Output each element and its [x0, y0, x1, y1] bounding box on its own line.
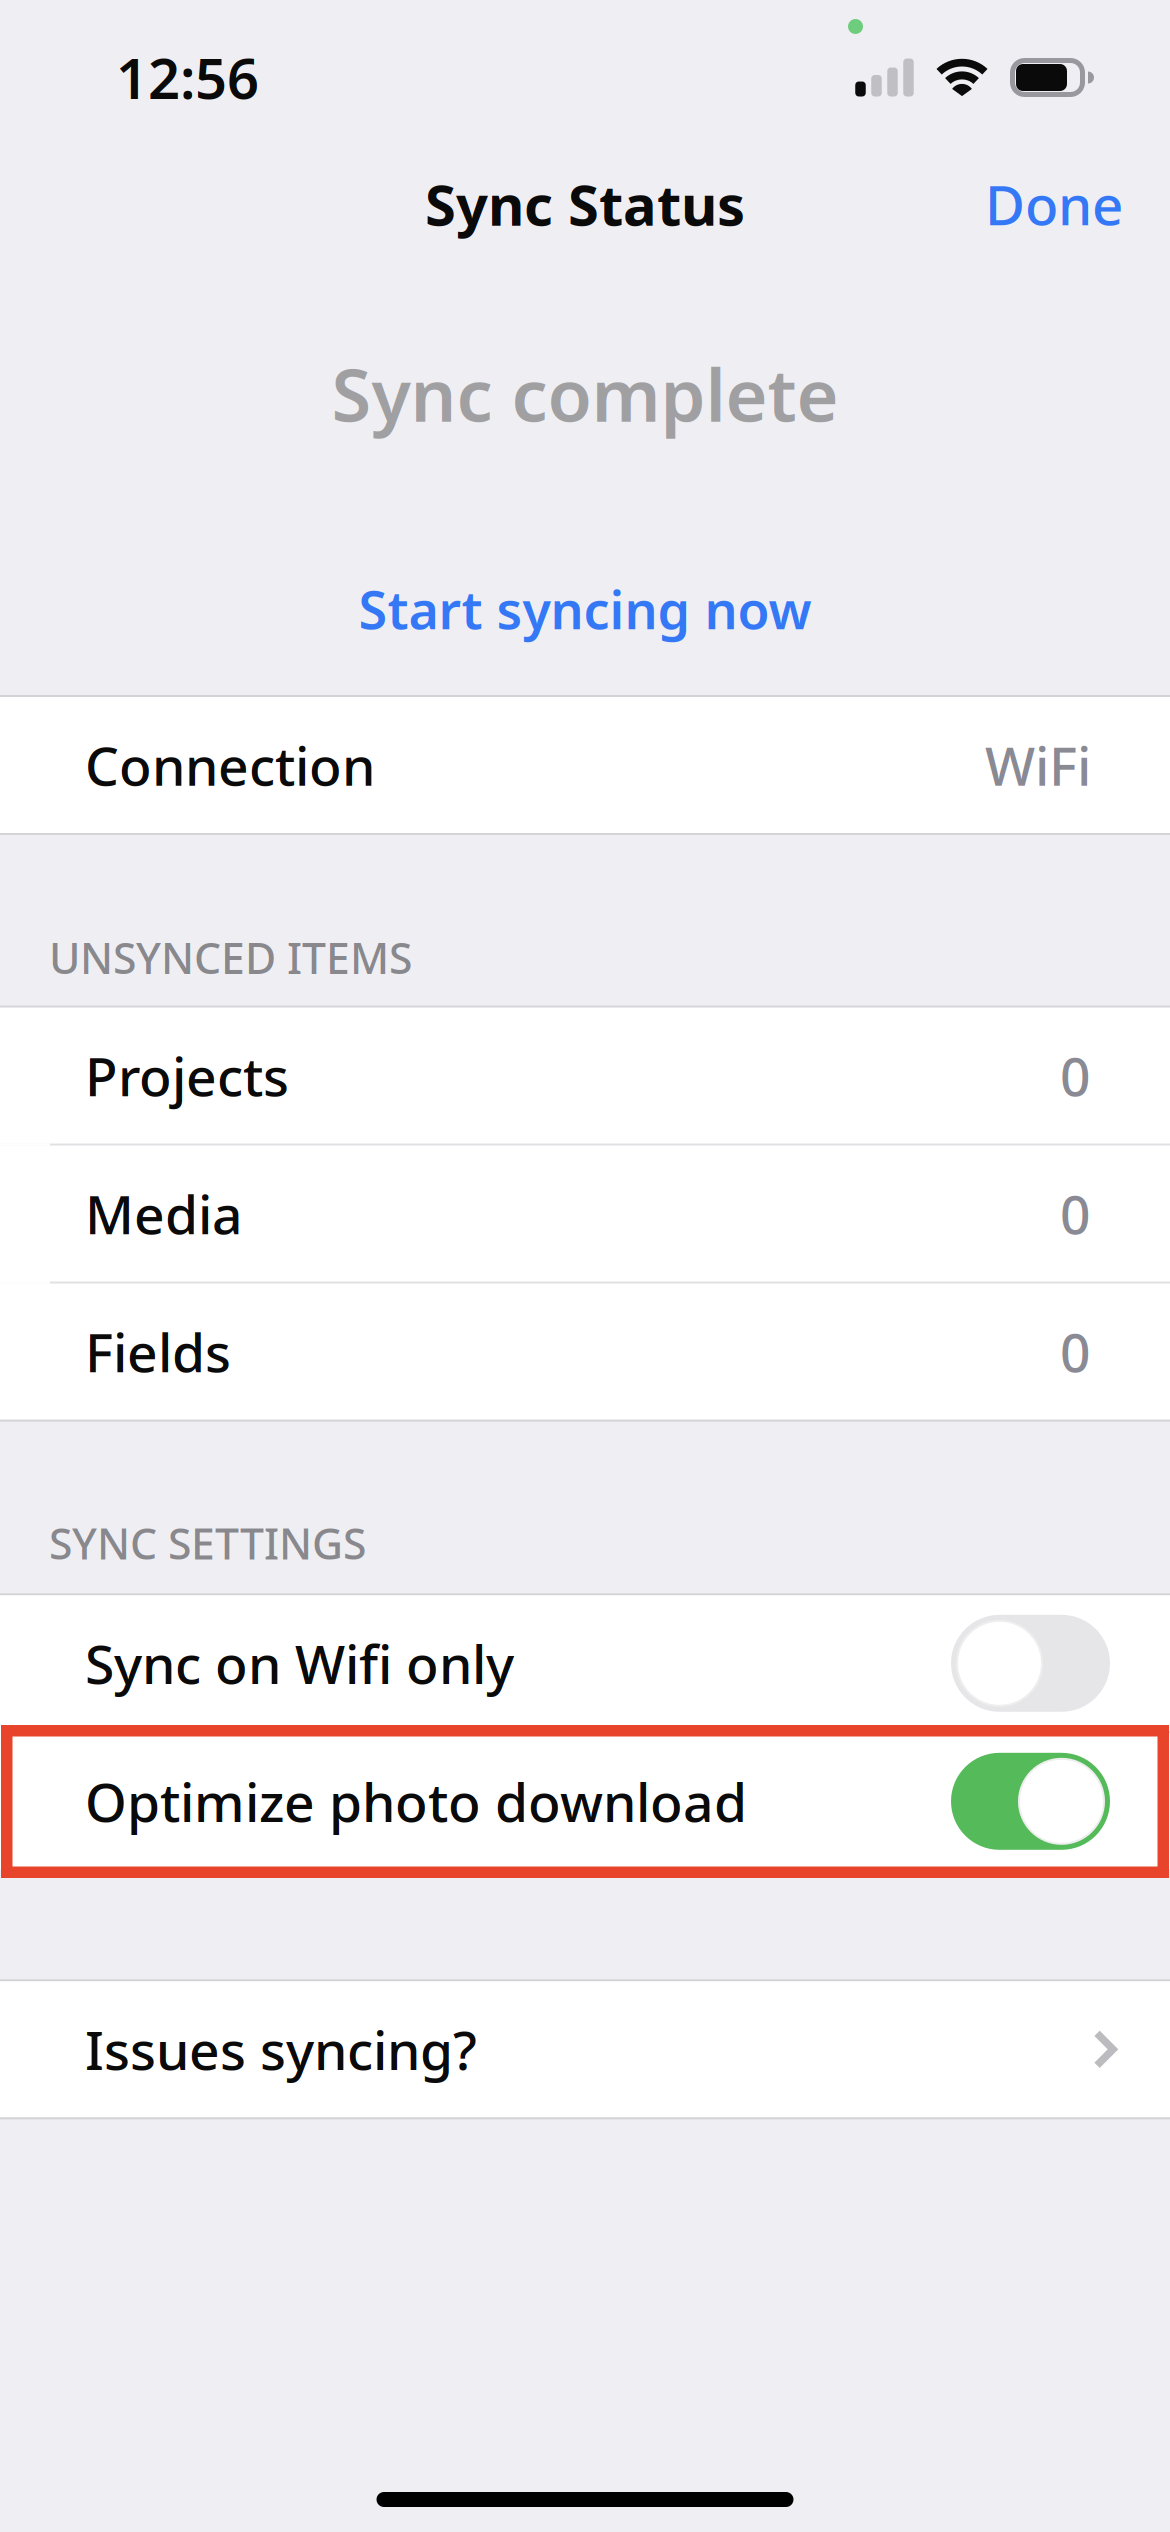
- button[interactable]: Fields: [0, 1284, 1170, 1420]
- staticText: Sync Status: [425, 167, 745, 241]
- button[interactable]: Sync on Wifi only: [0, 1595, 1170, 1731]
- staticText: 12:56: [116, 40, 259, 114]
- button[interactable]: Start syncing now: [358, 575, 811, 644]
- button[interactable]: Optimize photo download: [0, 1733, 1170, 1869]
- button[interactable]: Issues syncing?: [0, 1981, 1170, 2117]
- staticText: Start syncing now: [358, 575, 811, 644]
- staticText: Issues syncing?: [85, 2014, 477, 2085]
- button[interactable]: Connection: [0, 697, 1170, 833]
- staticText: Optimize photo download: [85, 1766, 747, 1837]
- button[interactable]: Media: [0, 1146, 1170, 1282]
- staticText: Sync complete: [331, 346, 838, 442]
- staticText: WiFi: [985, 730, 1091, 800]
- staticText: 0: [1060, 1040, 1091, 1111]
- button[interactable]: Done: [965, 152, 1143, 256]
- staticText: Fields: [85, 1316, 231, 1387]
- staticText: Projects: [85, 1040, 289, 1111]
- staticText: UNSYNCED ITEMS: [49, 929, 412, 986]
- staticText: 0: [1060, 1178, 1091, 1249]
- staticText: Done: [985, 168, 1123, 240]
- staticText: 0: [1060, 1316, 1091, 1387]
- button[interactable]: Projects: [0, 1008, 1170, 1144]
- staticText: Media: [85, 1178, 243, 1249]
- staticText: Connection: [85, 730, 375, 800]
- staticText: SYNC SETTINGS: [49, 1515, 366, 1571]
- staticText: Sync on Wifi only: [85, 1628, 514, 1699]
